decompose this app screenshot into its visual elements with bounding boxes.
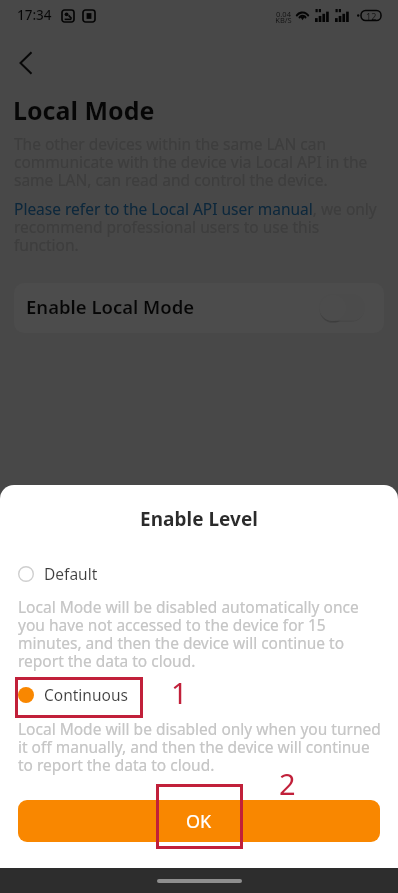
staticText: Local Mode will be disabled automaticall…: [18, 596, 386, 672]
staticText: 17:34: [17, 6, 52, 24]
staticText: Local Mode: [13, 93, 155, 127]
staticText: Local Mode will be disabled only when yo…: [18, 718, 386, 776]
button[interactable]: Back: [3, 40, 49, 86]
button[interactable]: Dismiss: [0, 0, 398, 893]
staticText: 12: [366, 10, 377, 22]
staticText: Enable Level: [0, 506, 398, 532]
staticText: OK: [186, 809, 212, 834]
button[interactable]: Default: [0, 555, 398, 592]
button[interactable]: OK: [18, 800, 380, 842]
staticText: Enable Local Mode: [26, 294, 195, 319]
staticText: 1: [171, 673, 188, 712]
button[interactable]: Continuous: [0, 676, 398, 713]
staticText: 0.04 KB/S: [275, 9, 292, 25]
staticText: Continuous: [44, 684, 128, 705]
staticText: Default: [44, 563, 98, 584]
button[interactable]: Enable Local Mode: [14, 283, 384, 333]
staticText: The other devices within the same LAN ca…: [14, 133, 384, 191]
staticText: 2: [279, 764, 296, 803]
staticText: Please refer to the Local API user manua…: [14, 198, 384, 256]
